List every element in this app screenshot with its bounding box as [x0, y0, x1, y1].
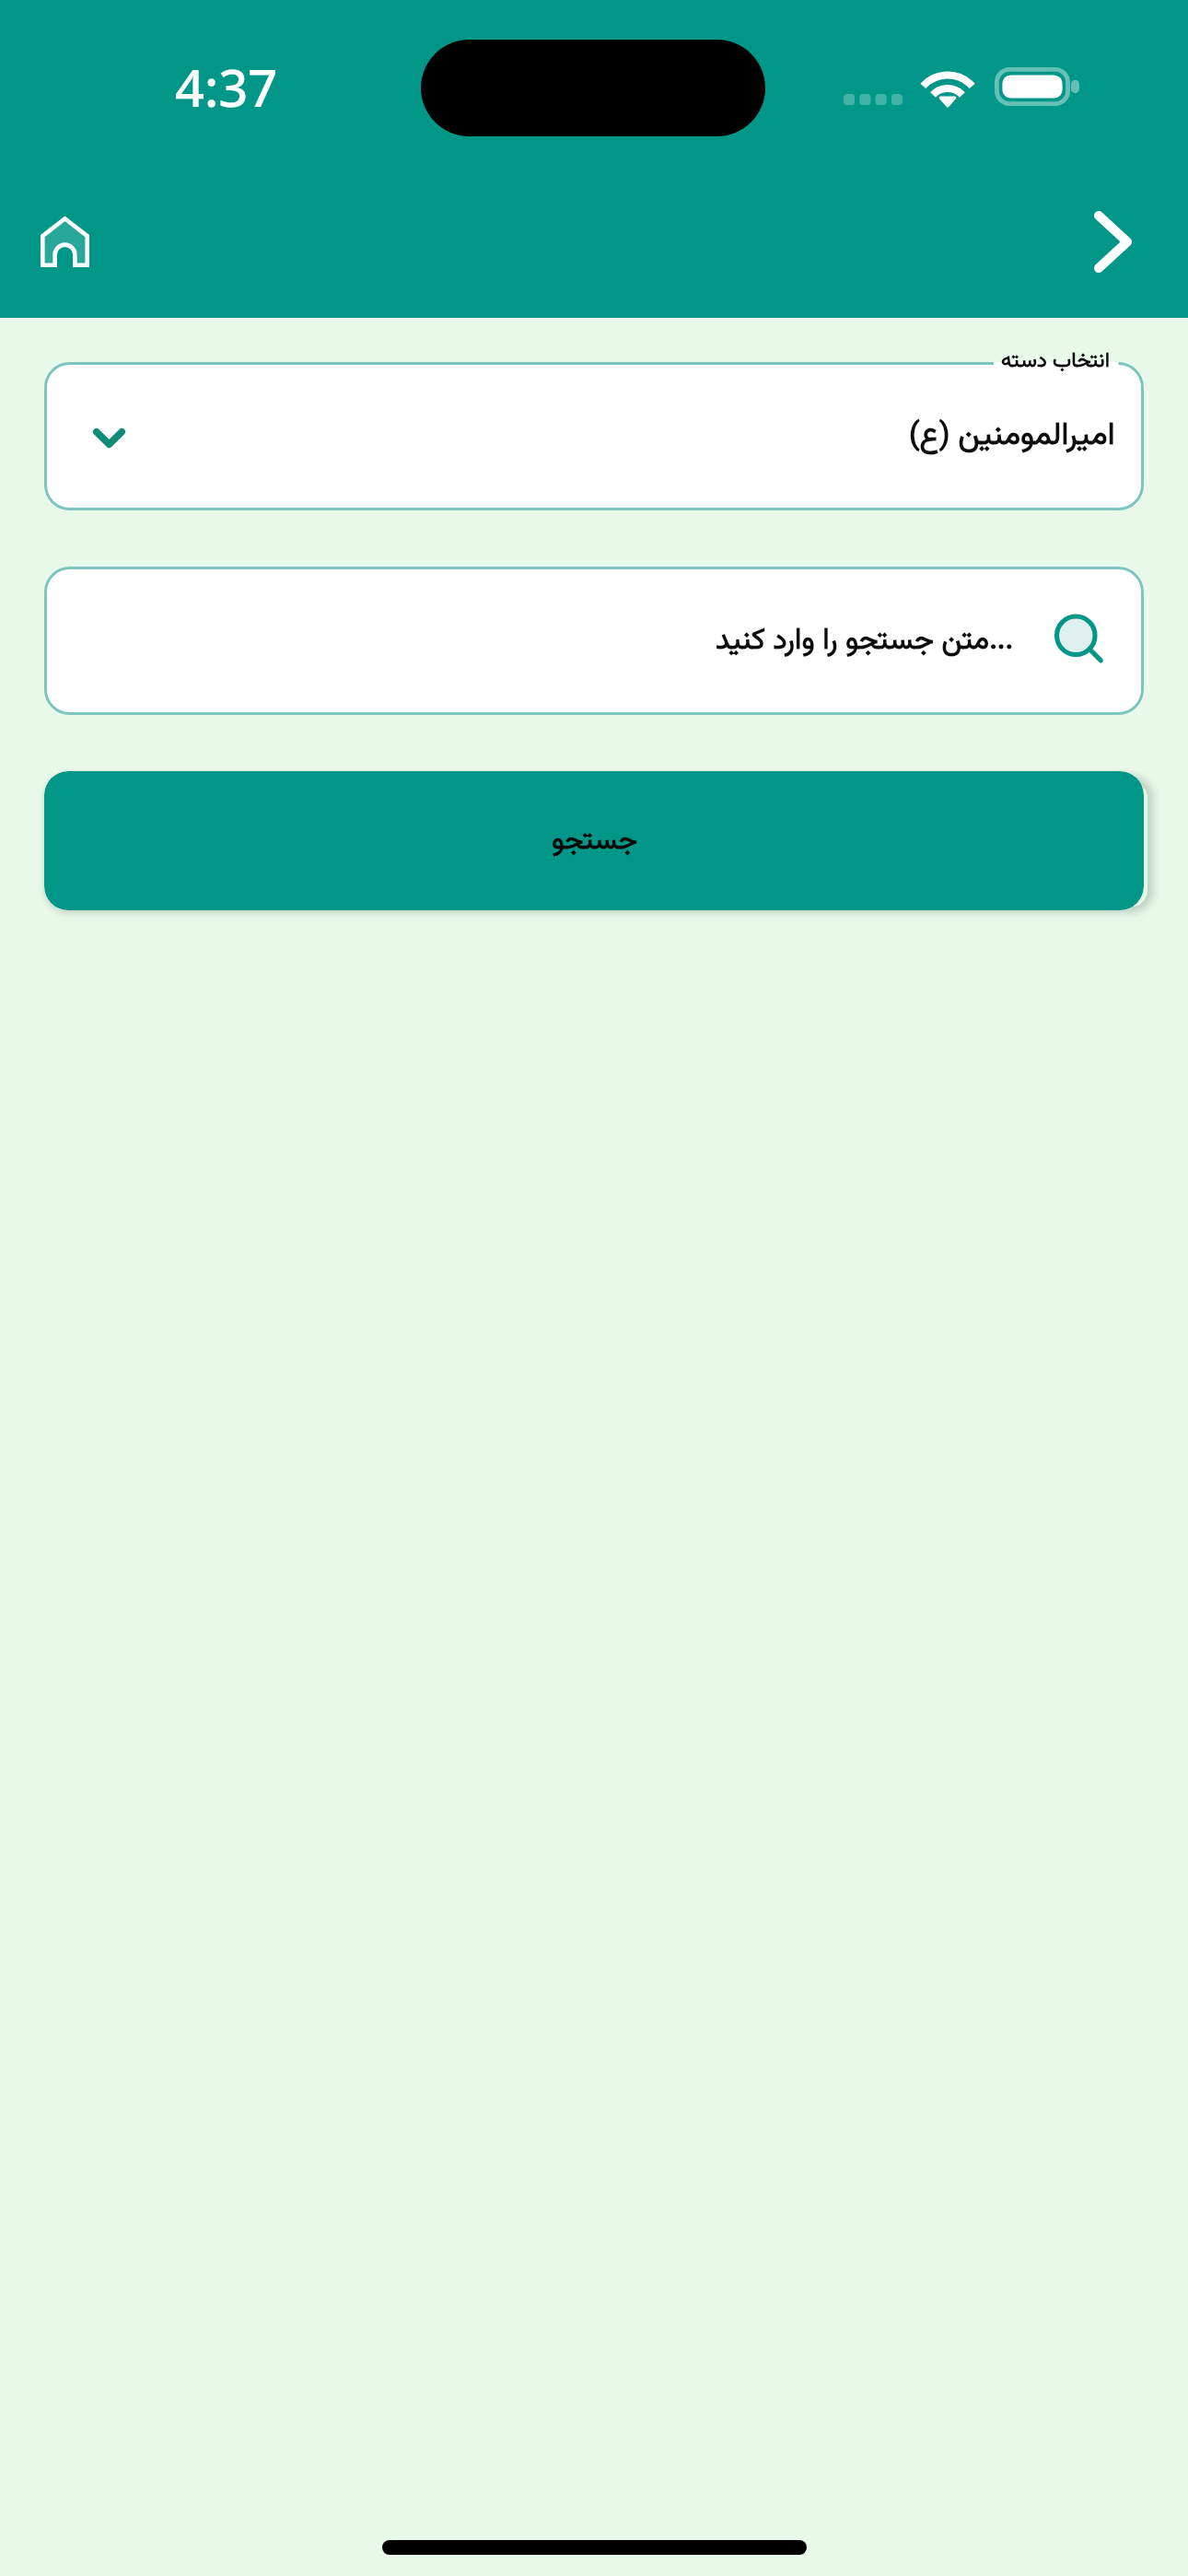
- button[interactable]: امیرالمومنین (ع): [44, 362, 1144, 510]
- staticText: انتخاب دسته: [1001, 345, 1110, 378]
- staticText: امیرالمومنین (ع): [909, 412, 1115, 461]
- button[interactable]: جستجو: [44, 771, 1144, 910]
- button[interactable]: Home: [15, 192, 114, 291]
- button[interactable]: متن جستجو را وارد کنید...: [44, 567, 1144, 715]
- staticText: 4:37: [175, 52, 278, 122]
- staticText: جستجو: [552, 819, 637, 863]
- staticText: متن جستجو را وارد کنید...: [716, 618, 1014, 664]
- button[interactable]: Next: [1063, 192, 1162, 291]
